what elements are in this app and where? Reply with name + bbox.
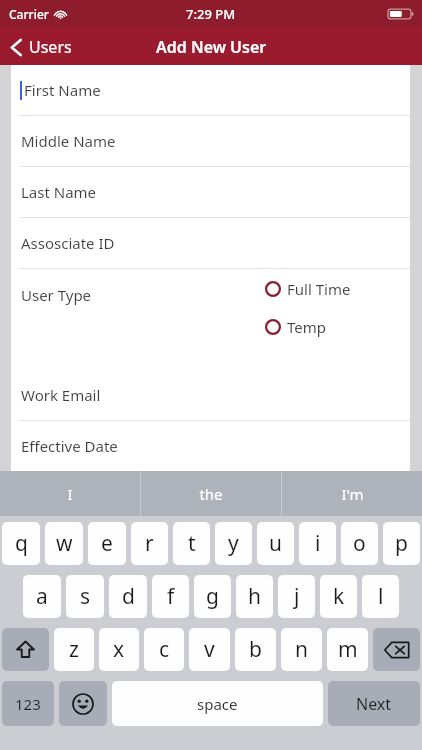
button[interactable]: 123 bbox=[2, 681, 54, 726]
button[interactable]: l bbox=[362, 575, 399, 618]
button[interactable]: Work Email bbox=[11, 370, 410, 420]
staticText: e bbox=[101, 529, 113, 558]
staticText: Assosciate ID bbox=[21, 233, 115, 253]
staticText: u bbox=[269, 529, 282, 558]
staticText: I'm bbox=[341, 484, 364, 504]
staticText: Full Time bbox=[287, 279, 351, 299]
staticText: l bbox=[378, 582, 384, 611]
button[interactable]: q bbox=[2, 522, 40, 565]
button[interactable]: Shift bbox=[2, 628, 49, 671]
button[interactable]: a bbox=[23, 575, 61, 618]
staticText: Carrier bbox=[9, 6, 49, 22]
staticText: space bbox=[197, 694, 238, 714]
button[interactable]: Full Time bbox=[263, 277, 353, 301]
button[interactable]: Assosciate ID bbox=[11, 218, 410, 268]
button[interactable]: n bbox=[281, 628, 322, 671]
button[interactable]: I'm bbox=[282, 471, 422, 516]
button[interactable]: Last Name bbox=[11, 167, 410, 217]
staticText: User Type bbox=[21, 285, 92, 305]
staticText: Effective Date bbox=[21, 436, 118, 456]
button[interactable]: m bbox=[327, 628, 368, 671]
staticText: Work Email bbox=[21, 385, 101, 405]
button[interactable]: x bbox=[99, 628, 139, 671]
staticText: g bbox=[206, 582, 219, 611]
button[interactable]: o bbox=[341, 522, 378, 565]
staticText: i bbox=[315, 529, 321, 558]
staticText: x bbox=[113, 635, 125, 664]
button[interactable]: y bbox=[215, 522, 252, 565]
button[interactable]: Emoji bbox=[59, 681, 107, 726]
staticText: Temp bbox=[287, 317, 327, 337]
button[interactable]: b bbox=[235, 628, 276, 671]
button[interactable]: f bbox=[152, 575, 189, 618]
button[interactable]: k bbox=[320, 575, 357, 618]
button[interactable]: Users bbox=[0, 31, 84, 63]
button[interactable]: s bbox=[66, 575, 104, 618]
staticText: j bbox=[294, 582, 300, 611]
button[interactable]: Backspace bbox=[373, 628, 420, 671]
staticText: r bbox=[145, 529, 154, 558]
button[interactable]: Effective Date bbox=[11, 421, 410, 471]
button[interactable]: r bbox=[131, 522, 168, 565]
staticText: z bbox=[69, 635, 79, 664]
staticText: Last Name bbox=[21, 182, 97, 202]
button[interactable]: e bbox=[88, 522, 126, 565]
staticText: Middle Name bbox=[21, 131, 116, 151]
staticText: 123 bbox=[15, 694, 41, 714]
staticText: q bbox=[15, 529, 28, 558]
button[interactable]: Middle Name bbox=[11, 116, 410, 166]
staticText: c bbox=[159, 635, 170, 664]
button[interactable]: i bbox=[299, 522, 336, 565]
button[interactable]: Next bbox=[328, 681, 420, 726]
button[interactable]: j bbox=[278, 575, 315, 618]
staticText: Next bbox=[356, 693, 392, 715]
staticText: a bbox=[36, 582, 48, 611]
staticText: m bbox=[338, 635, 358, 664]
staticText: 7:29 PM bbox=[186, 5, 236, 23]
button[interactable]: the bbox=[141, 471, 281, 516]
button[interactable]: d bbox=[109, 575, 147, 618]
button[interactable]: t bbox=[173, 522, 210, 565]
button[interactable]: z bbox=[54, 628, 94, 671]
staticText: n bbox=[295, 635, 308, 664]
staticText: k bbox=[333, 582, 345, 611]
button[interactable]: v bbox=[189, 628, 230, 671]
staticText: I bbox=[67, 484, 73, 504]
staticText: w bbox=[56, 529, 73, 558]
staticText: d bbox=[122, 582, 135, 611]
staticText: p bbox=[395, 529, 408, 558]
staticText: the bbox=[199, 484, 223, 504]
staticText: v bbox=[204, 635, 215, 664]
staticText: s bbox=[80, 582, 91, 611]
staticText: Users bbox=[29, 36, 72, 58]
staticText: f bbox=[167, 582, 175, 611]
button[interactable]: First Name bbox=[11, 65, 410, 115]
staticText: o bbox=[353, 529, 366, 558]
button[interactable]: u bbox=[257, 522, 294, 565]
button[interactable]: g bbox=[194, 575, 231, 618]
staticText: First Name bbox=[24, 80, 101, 100]
button[interactable]: Temp bbox=[263, 315, 329, 339]
button[interactable]: c bbox=[144, 628, 184, 671]
button[interactable]: space bbox=[112, 681, 323, 726]
staticText: h bbox=[248, 582, 261, 611]
staticText: t bbox=[188, 529, 196, 558]
staticText: b bbox=[249, 635, 262, 664]
staticText: Add New User bbox=[156, 36, 267, 58]
button[interactable]: I bbox=[0, 471, 140, 516]
button[interactable]: w bbox=[45, 522, 83, 565]
button[interactable]: p bbox=[383, 522, 420, 565]
staticText: y bbox=[228, 529, 239, 558]
button[interactable]: h bbox=[236, 575, 273, 618]
